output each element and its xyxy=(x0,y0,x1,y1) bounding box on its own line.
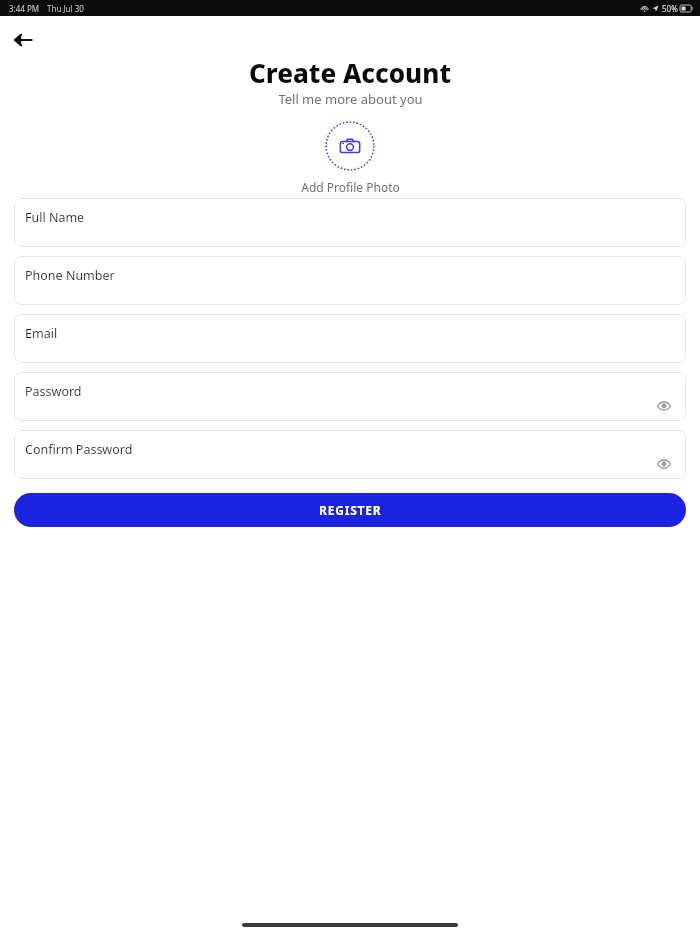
button[interactable]: Email xyxy=(14,314,686,363)
staticText: Full Name xyxy=(25,209,85,226)
button[interactable]: Full Name xyxy=(14,198,686,247)
staticText: Email xyxy=(25,325,58,342)
button[interactable]: Password xyxy=(14,372,686,421)
staticText: Tell me more about you xyxy=(278,90,423,108)
staticText: 50% xyxy=(662,3,678,14)
button[interactable]: Back xyxy=(8,25,38,55)
staticText: Phone Number xyxy=(25,267,115,284)
button[interactable]: REGISTER xyxy=(14,493,686,527)
button[interactable]: Add Profile Photo xyxy=(325,121,375,171)
staticText: Password xyxy=(25,383,82,400)
staticText: REGISTER xyxy=(319,502,382,518)
staticText: 3:44 PM xyxy=(9,3,40,14)
staticText: Confirm Password xyxy=(25,441,133,458)
button[interactable]: Toggle password visibility xyxy=(654,454,674,474)
button[interactable]: Phone Number xyxy=(14,256,686,305)
staticText: Create Account xyxy=(249,55,451,90)
button[interactable]: Toggle password visibility xyxy=(654,396,674,416)
staticText: Thu Jul 30 xyxy=(47,3,84,14)
button[interactable]: Confirm Password xyxy=(14,430,686,479)
staticText: Add Profile Photo xyxy=(301,179,400,195)
